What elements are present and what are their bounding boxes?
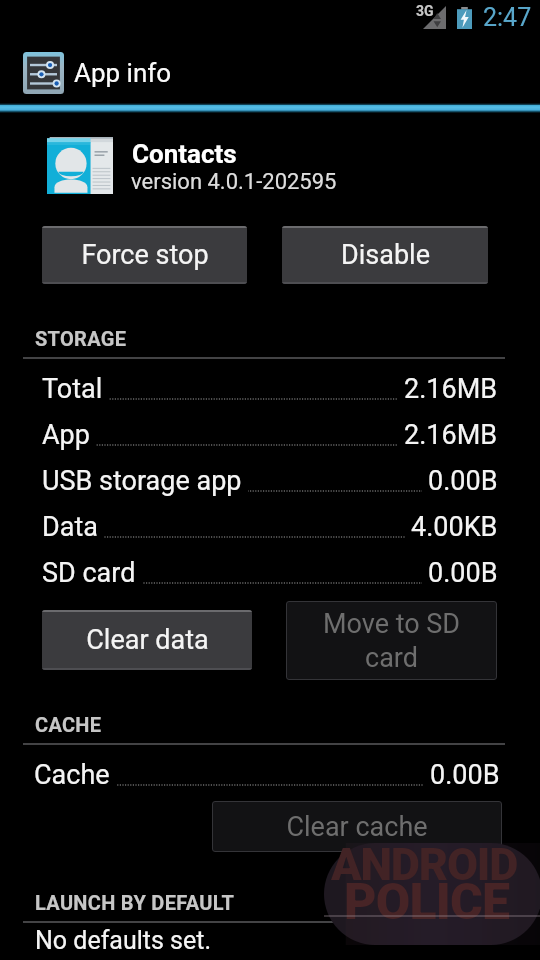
- staticText: USB storage app: [42, 465, 242, 497]
- button[interactable]: Settings: [20, 50, 66, 96]
- button[interactable]: Clear data: [42, 610, 252, 670]
- staticText: Contacts: [132, 139, 237, 169]
- staticText: Move to SD card: [300, 608, 483, 674]
- staticText: 2:47: [483, 3, 532, 32]
- staticText: 0.00B: [428, 465, 498, 497]
- staticText: No defaults set.: [35, 926, 212, 955]
- button[interactable]: USB storage app: [0, 458, 540, 504]
- staticText: Total: [42, 373, 103, 405]
- staticText: Clear cache: [286, 811, 428, 843]
- staticText: CACHE: [35, 713, 102, 736]
- staticText: version 4.0.1-202595: [131, 169, 337, 195]
- button[interactable]: Disable: [282, 226, 488, 284]
- staticText: STORAGE: [35, 327, 127, 350]
- staticText: 2.16MB: [404, 419, 498, 451]
- staticText: ANDROID: [331, 838, 518, 891]
- staticText: Data: [42, 511, 98, 543]
- staticText: Disable: [341, 239, 430, 271]
- staticText: LAUNCH BY DEFAULT: [35, 891, 235, 914]
- staticText: Clear data: [86, 624, 209, 656]
- button[interactable]: Data: [0, 504, 540, 550]
- staticText: 0.00B: [428, 557, 498, 589]
- staticText: App: [42, 419, 90, 451]
- staticText: 4.00KB: [411, 511, 498, 543]
- button[interactable]: SD card: [0, 550, 540, 596]
- button[interactable]: Move to SD card: [286, 601, 497, 680]
- staticText: Force stop: [81, 239, 209, 271]
- staticText: Cache: [34, 759, 110, 791]
- button[interactable]: Force stop: [42, 226, 247, 284]
- staticText: 2.16MB: [404, 373, 498, 405]
- button[interactable]: Total: [0, 366, 540, 412]
- staticText: 0.00B: [430, 759, 500, 791]
- staticText: App info: [74, 58, 172, 88]
- button[interactable]: App: [0, 412, 540, 458]
- staticText: 3G: [416, 3, 434, 19]
- button[interactable]: Cache: [0, 752, 540, 798]
- staticText: POLICE: [344, 873, 510, 932]
- button[interactable]: Clear cache: [212, 801, 502, 852]
- staticText: SD card: [42, 557, 136, 589]
